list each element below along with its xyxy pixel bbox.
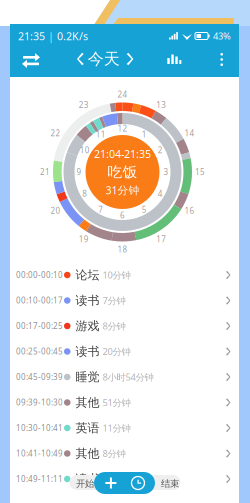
staticText: 10:41-10:49 (16, 448, 63, 459)
staticText: 2 (158, 145, 163, 155)
staticText: 00:00-00:10 (16, 270, 63, 280)
staticText: 19 (79, 234, 89, 244)
staticText: 1 (142, 129, 147, 140)
staticText: 13 (156, 100, 166, 110)
staticText: 9 (76, 167, 81, 177)
staticText: 21:35 (18, 29, 45, 43)
staticText: 23 (79, 100, 89, 110)
staticText: 20 (50, 205, 60, 216)
staticText: | (48, 29, 54, 43)
staticText: 其他 (75, 395, 99, 410)
staticText: 今天 (88, 49, 120, 69)
button[interactable]: 10:41-10:49 (10, 442, 239, 464)
staticText: 00:17-00:25 (16, 321, 63, 331)
staticText: 英语 (75, 421, 99, 435)
staticText: 10分钟 (102, 269, 130, 281)
button[interactable]: 00:00-00:10 (10, 264, 239, 286)
staticText: 15 (195, 167, 205, 177)
staticText: 21 (40, 167, 50, 177)
staticText: 读书 (75, 344, 99, 359)
staticText: 0.2K/s (57, 29, 88, 43)
button[interactable]: 00:45-09:39 (10, 366, 239, 388)
button[interactable]: 00:17-00:25 (10, 315, 239, 337)
staticText: 11分钟 (102, 422, 130, 434)
staticText: 11 (96, 129, 106, 140)
button[interactable]: Switch view (20, 48, 42, 70)
staticText: 00:25-00:45 (16, 346, 63, 357)
button[interactable]: 09:39-10:30 (10, 391, 239, 413)
staticText: 4 (158, 188, 163, 199)
staticText: 20分钟 (102, 345, 130, 358)
staticText: 14 (185, 128, 195, 138)
button[interactable]: 00:25-00:45 (10, 340, 239, 362)
staticText: 22 (50, 128, 60, 138)
button[interactable]: More options (215, 50, 229, 68)
staticText: 10:49-11:11 (16, 474, 63, 484)
staticText: 12 (117, 123, 127, 134)
staticText: 18 (117, 244, 127, 255)
staticText: 8 (82, 188, 87, 199)
button[interactable]: Previous day (74, 50, 86, 68)
staticText: 17 (156, 234, 166, 244)
staticText: 读书 (75, 472, 99, 486)
button[interactable]: 今天 (86, 49, 122, 69)
staticText: 游戏 (75, 319, 99, 333)
staticText: 6 (120, 210, 125, 221)
staticText: 51分钟 (102, 396, 130, 409)
staticText: 43% (213, 30, 231, 42)
staticText: 21:04-21:35 (94, 147, 151, 161)
staticText: 吃饭 (107, 163, 137, 181)
button[interactable]: Add entry (94, 472, 155, 494)
staticText: 31分钟 (105, 183, 139, 197)
staticText: 8分钟 (102, 320, 125, 332)
staticText: 论坛 (75, 268, 99, 282)
button[interactable]: 10:30-10:41 (10, 417, 239, 439)
staticText: 22分钟 (102, 473, 130, 485)
staticText: 8小时54分钟 (102, 371, 153, 383)
staticText: 睡觉 (75, 370, 99, 384)
staticText: 10 (80, 145, 90, 155)
button[interactable]: Next day (122, 50, 134, 68)
button[interactable]: Statistics (165, 50, 183, 68)
staticText: 10:30-10:41 (16, 423, 63, 433)
staticText: 7分钟 (102, 294, 125, 307)
staticText: 其他 (75, 446, 99, 461)
staticText: 00:45-09:39 (16, 372, 63, 382)
staticText: 00:10-00:17 (16, 295, 63, 306)
button[interactable]: 10:49-11:11 (10, 468, 239, 490)
staticText: 开始 (76, 478, 94, 489)
staticText: 结束 (161, 478, 179, 489)
staticText: 5 (142, 204, 147, 215)
staticText: 3 (163, 167, 168, 177)
staticText: 24 (117, 89, 127, 100)
staticText: 16 (185, 205, 195, 216)
staticText: 8分钟 (102, 447, 125, 460)
staticText: 7 (98, 204, 103, 215)
staticText: 09:39-10:30 (16, 397, 63, 408)
staticText: 读书 (75, 293, 99, 308)
button[interactable]: 00:10-00:17 (10, 289, 239, 311)
